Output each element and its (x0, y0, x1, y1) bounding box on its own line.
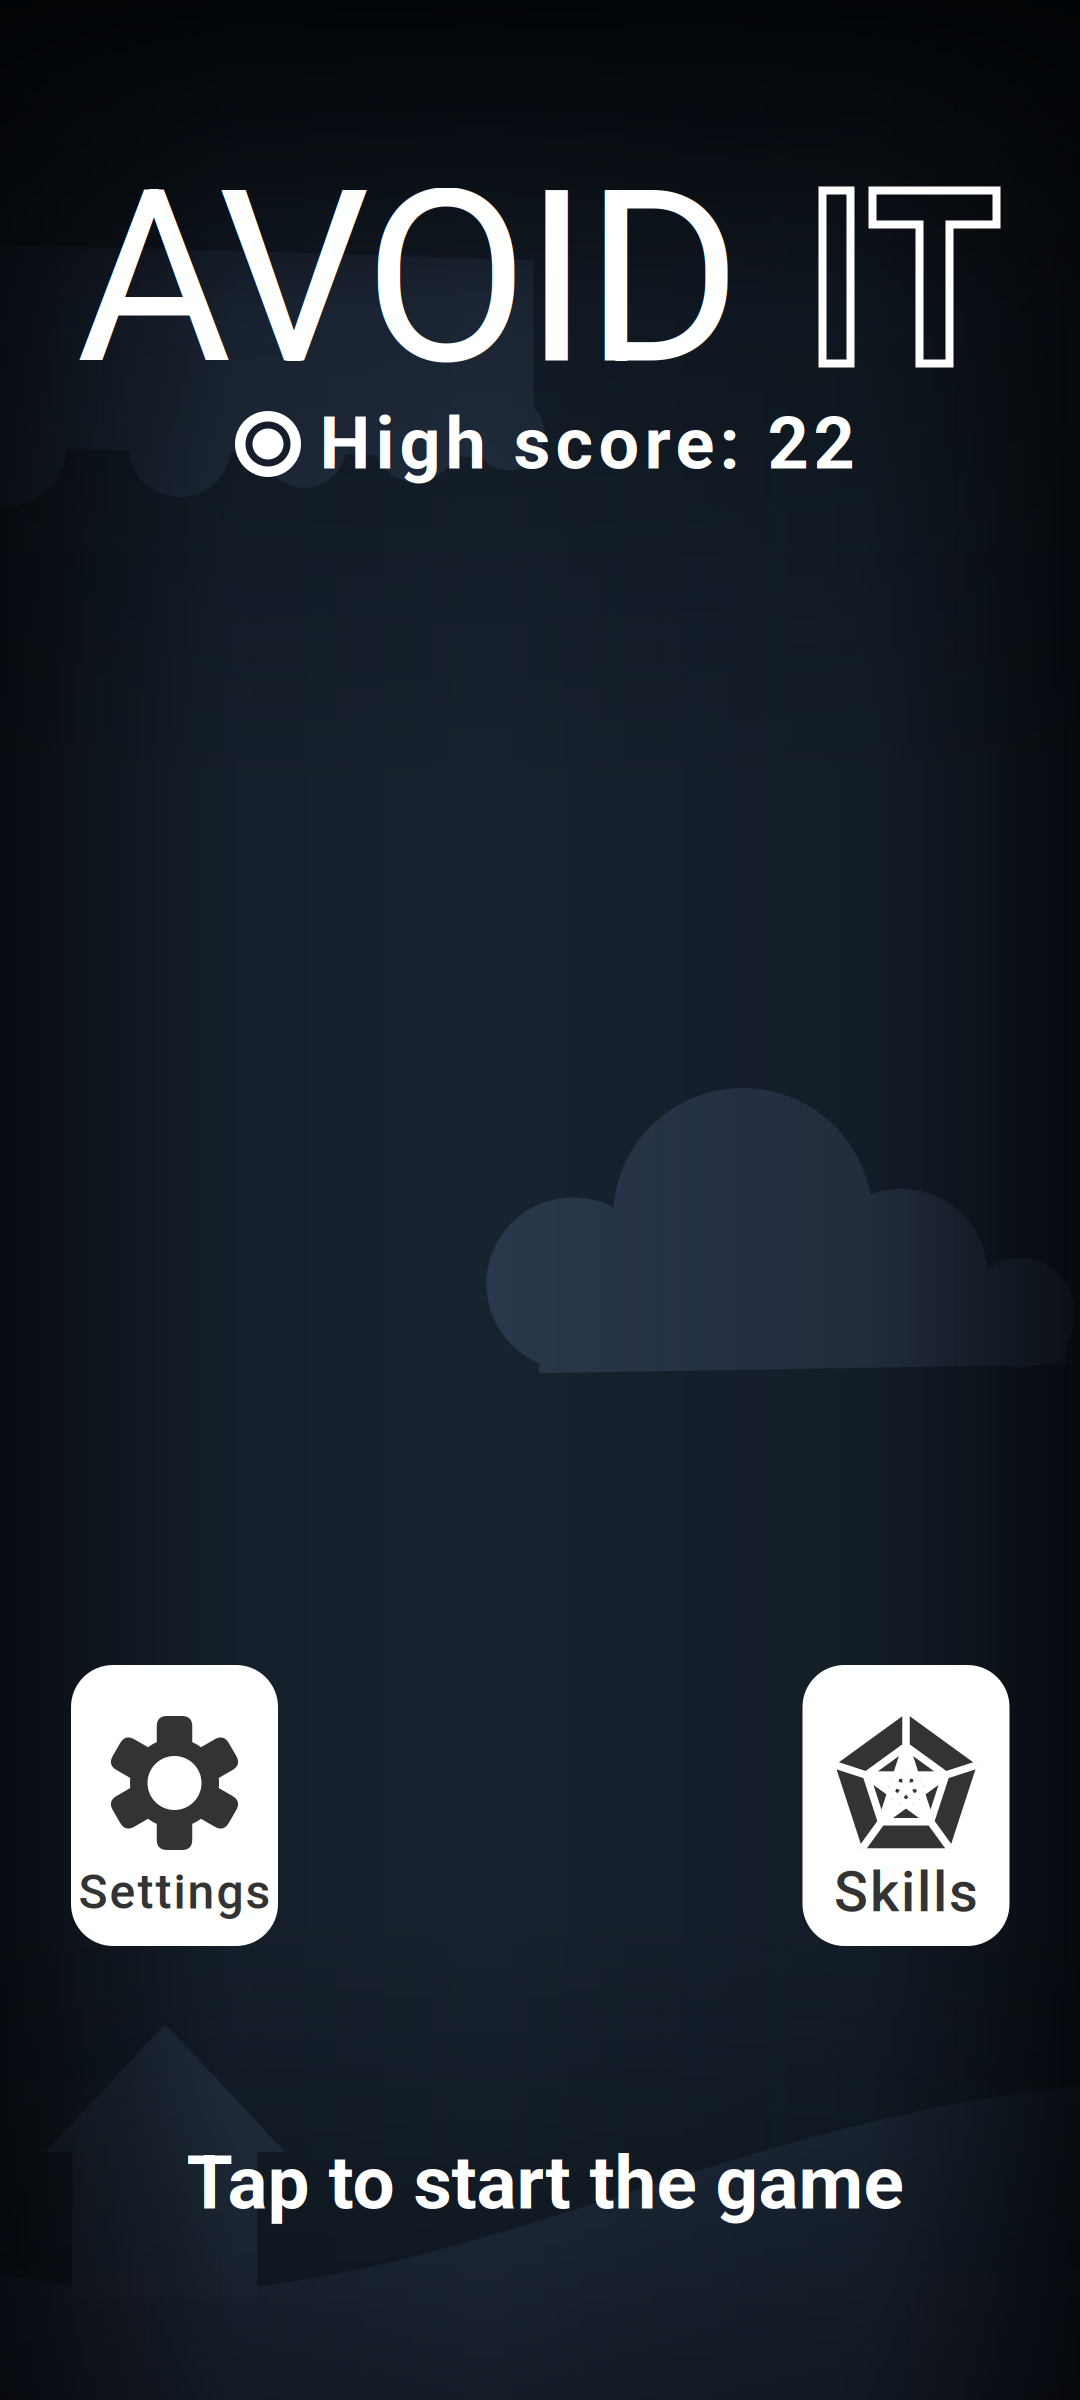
button[interactable]: Skills (802, 1665, 1009, 1946)
staticText: Tap to start the game (186, 2139, 903, 2227)
staticText: Skills (834, 1859, 978, 1925)
button[interactable]: Tap to start the game (145, 2123, 945, 2243)
button[interactable]: Settings (71, 1665, 278, 1946)
staticText: High score: 22 (319, 402, 854, 486)
staticText: Settings (78, 1864, 270, 1920)
staticText: AVOID (76, 139, 742, 419)
